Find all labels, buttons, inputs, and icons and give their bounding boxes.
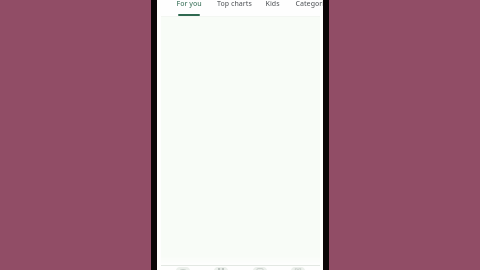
button[interactable]: Kids	[254, 0, 290, 16]
button[interactable]: Top charts	[216, 0, 252, 16]
staticText: Kids	[265, 0, 280, 9]
staticText: For you	[176, 0, 202, 9]
button[interactable]: Apps	[204, 266, 238, 270]
button[interactable]: Games	[166, 266, 200, 270]
button[interactable]: Movies	[243, 266, 277, 270]
button[interactable]: For you	[171, 0, 207, 16]
staticText: Categories	[295, 0, 323, 9]
button[interactable]: Books	[281, 266, 315, 270]
staticText: Top charts	[217, 0, 252, 9]
button[interactable]: Categories	[295, 0, 323, 16]
